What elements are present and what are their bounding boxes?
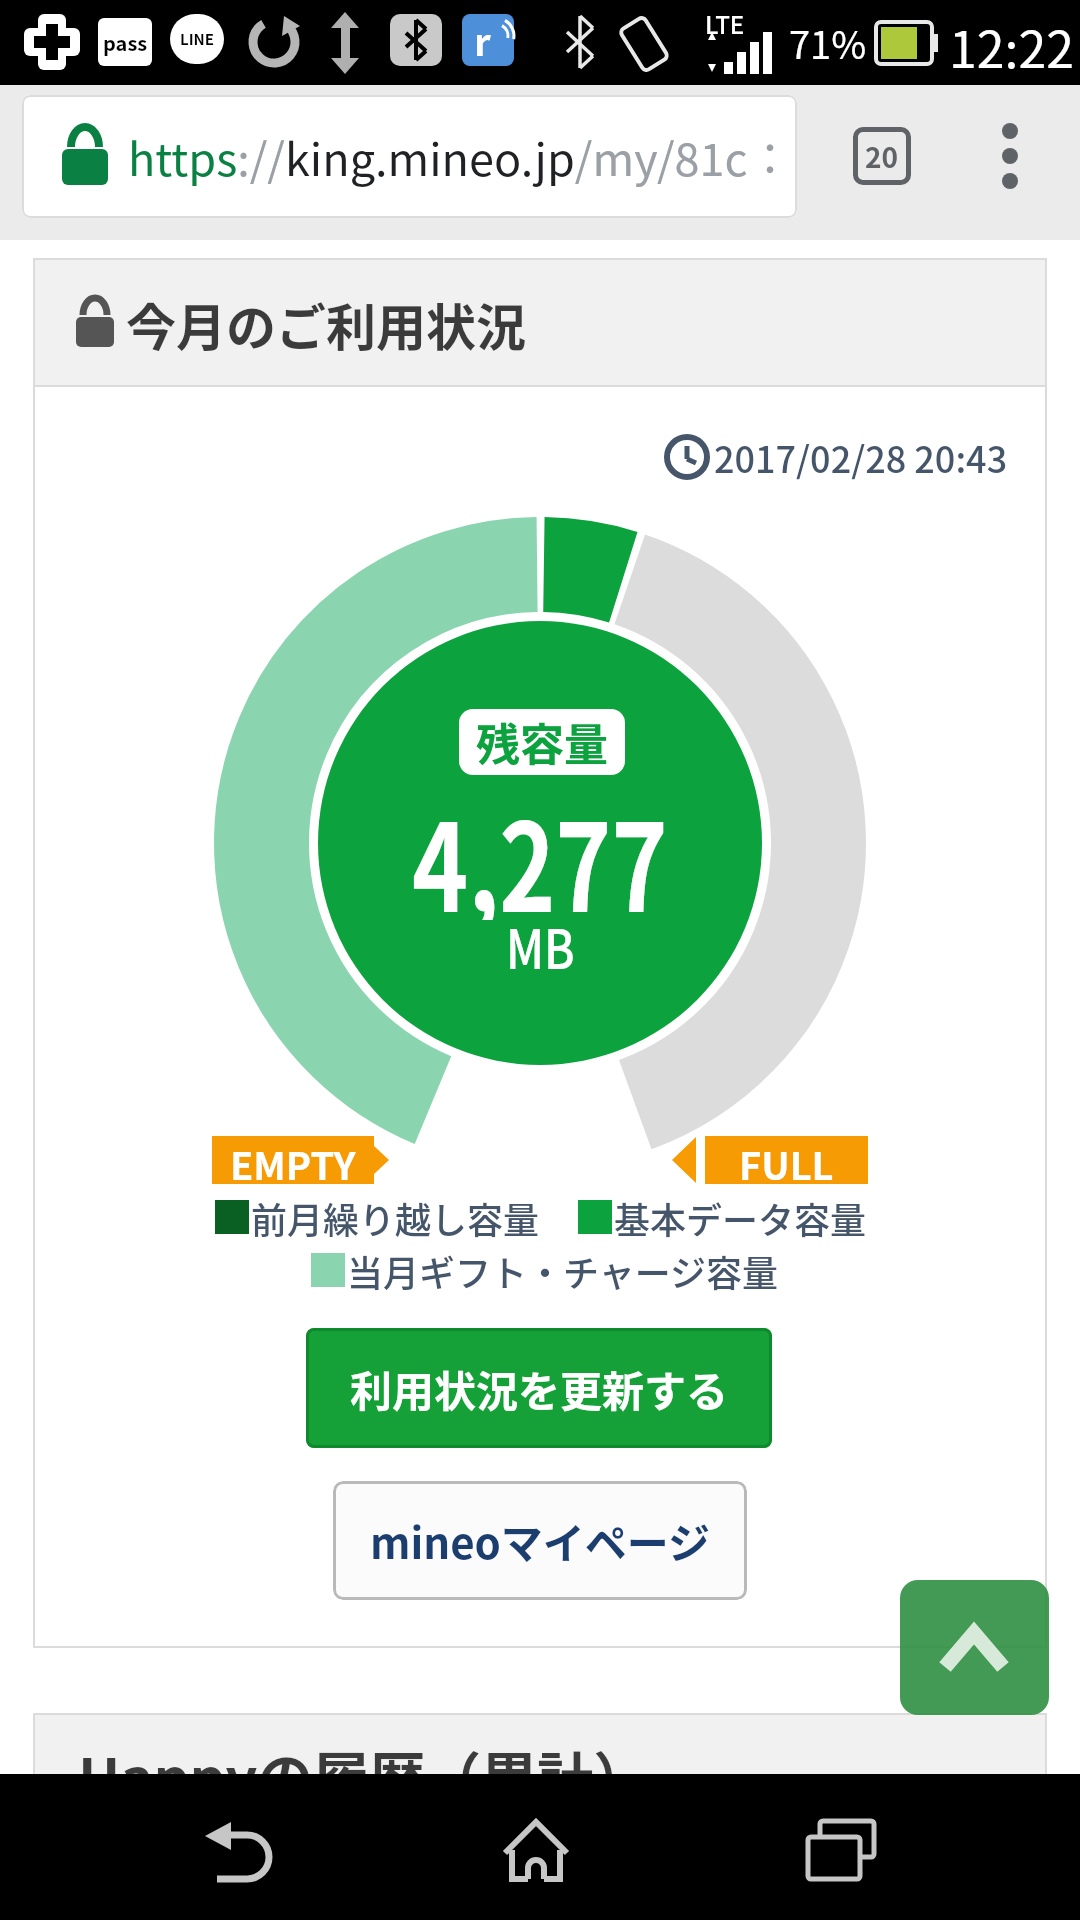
staticText: 基本データ容量 [614, 1192, 867, 1242]
button[interactable] [306, 1328, 772, 1448]
staticText: pass [103, 28, 148, 57]
button[interactable] [900, 1580, 1049, 1715]
staticText: 20 [865, 136, 899, 177]
button[interactable] [853, 127, 911, 185]
staticText: 2017/02/28 20:43 [714, 431, 1008, 483]
staticText: EMPTY [230, 1136, 356, 1184]
staticText: 前月繰り越し容量 [251, 1192, 540, 1242]
staticText: 4,277 [412, 770, 668, 920]
staticText: https://king.mineo.jp/my/81c∶ [128, 124, 778, 189]
button[interactable] [22, 95, 797, 218]
staticText: mineoマイページ [370, 1510, 711, 1571]
staticText: 残容量 [476, 710, 608, 774]
staticText: r [474, 12, 491, 64]
button[interactable] [333, 1481, 747, 1600]
staticText: LINE [180, 28, 215, 50]
button[interactable] [505, 1820, 567, 1882]
button[interactable] [203, 1817, 279, 1887]
staticText: LTE [705, 6, 745, 36]
staticText: 当月ギフト・チャージ容量 [347, 1245, 778, 1295]
staticText: Happyの履歴（累計） [78, 1734, 650, 1814]
staticText: 71% [789, 15, 867, 70]
staticText: MB [506, 906, 575, 976]
staticText: 今月のご利用状況 [126, 288, 526, 358]
staticText: FULL [739, 1136, 834, 1184]
button[interactable] [995, 125, 1025, 187]
button[interactable] [806, 1821, 876, 1885]
staticText: 12:22 [949, 10, 1074, 74]
staticText: 利用状況を更新する [350, 1358, 729, 1419]
